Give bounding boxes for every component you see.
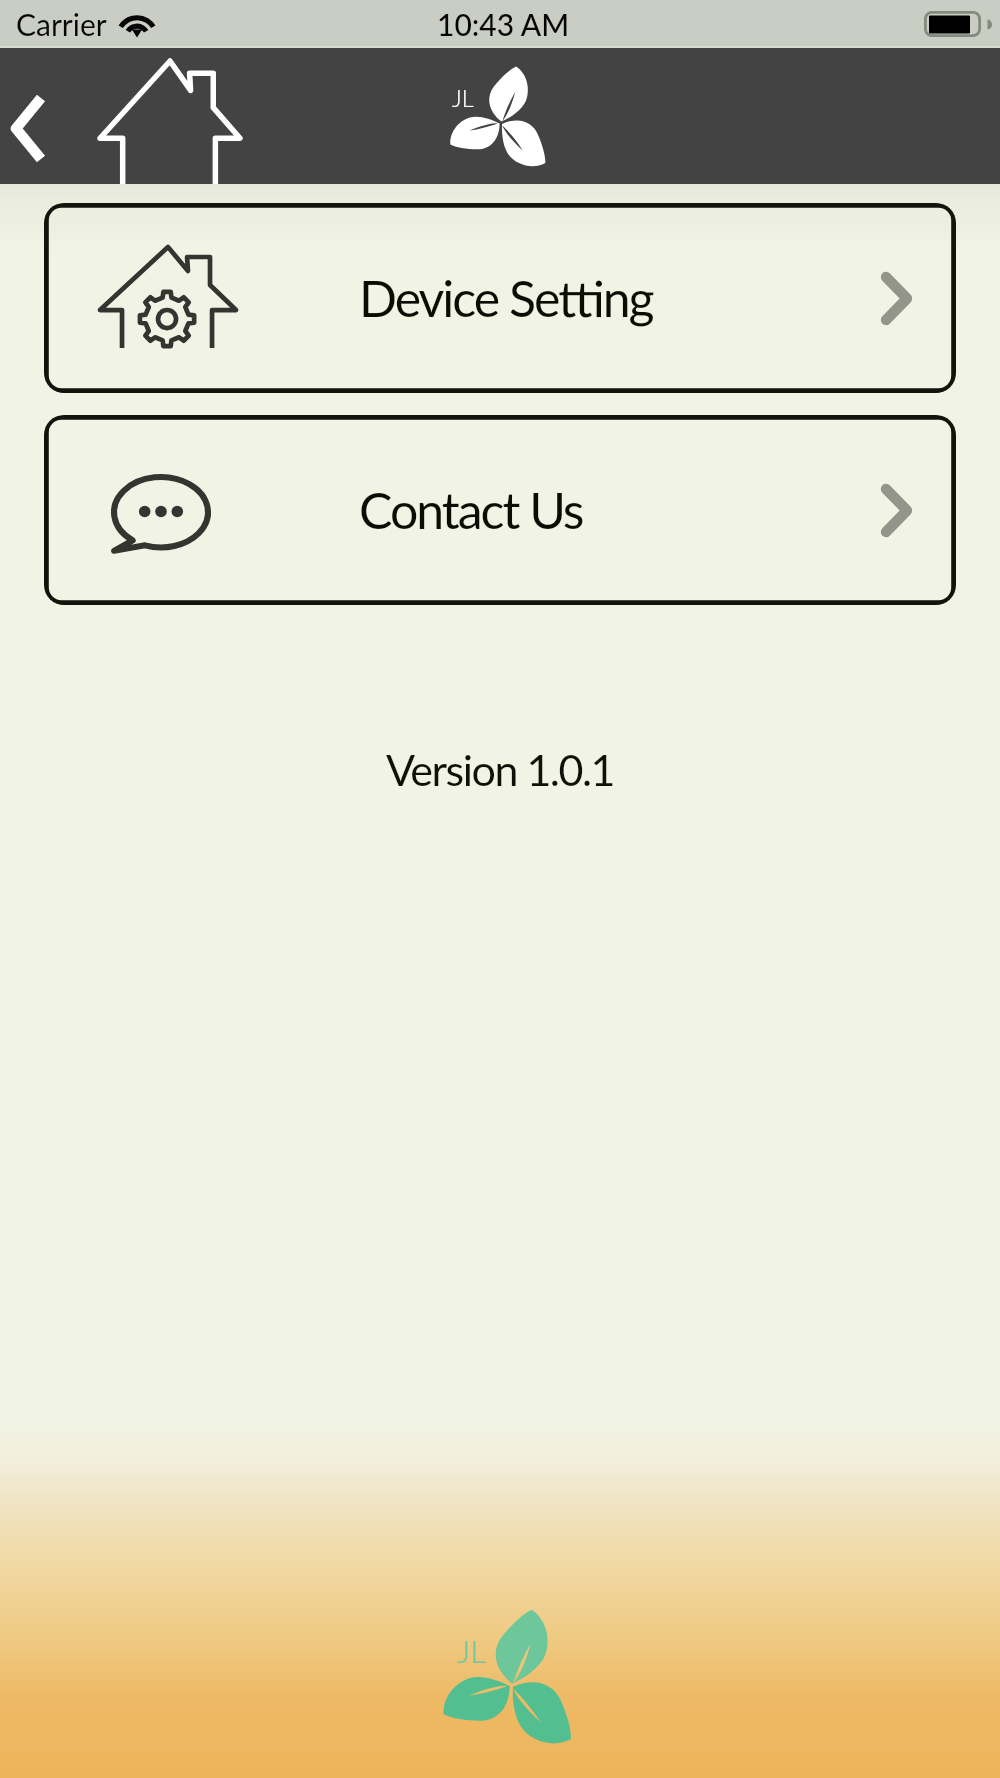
button[interactable]: Contact Us: [44, 415, 956, 605]
staticText: JL: [452, 84, 474, 112]
staticText: 10:43 AM: [437, 6, 570, 42]
staticText: Carrier: [16, 6, 107, 42]
staticText: Device Setting: [359, 268, 653, 328]
staticText: Version 1.0.1: [0, 744, 1000, 796]
staticText: JL: [457, 1631, 487, 1669]
button[interactable]: Device Setting: [44, 203, 956, 393]
staticText: Contact Us: [359, 480, 583, 540]
button[interactable]: Back: [0, 48, 86, 184]
